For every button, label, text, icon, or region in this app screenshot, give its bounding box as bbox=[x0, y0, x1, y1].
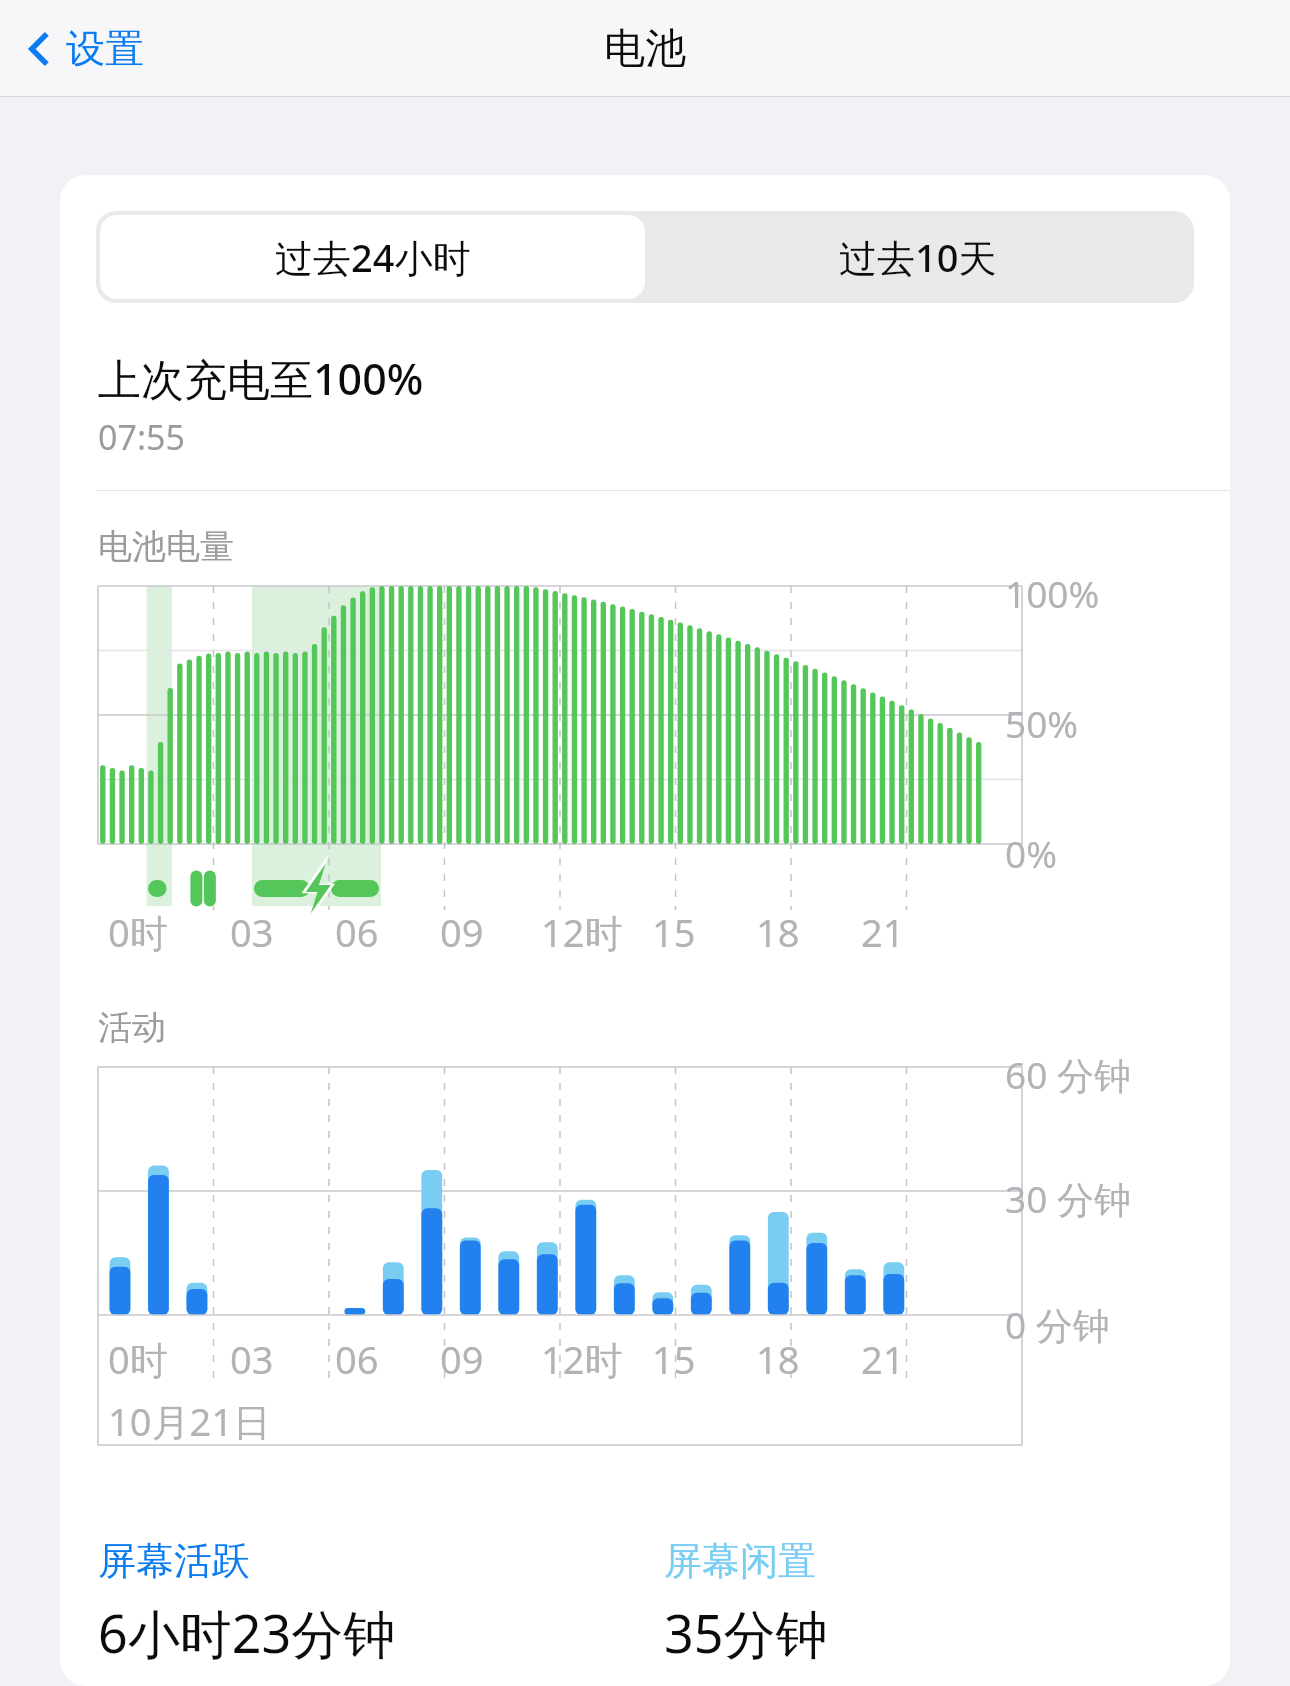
staticText: 设置 bbox=[66, 24, 144, 73]
staticText: 06 bbox=[335, 906, 379, 958]
staticText: 07:55 bbox=[98, 414, 185, 460]
staticText: 活动 bbox=[98, 1006, 166, 1049]
staticText: 0时 bbox=[108, 1333, 168, 1385]
staticText: 上次充电至100% bbox=[98, 349, 424, 408]
button[interactable]: 屏幕闲置 bbox=[664, 1537, 1230, 1668]
staticText: 100% bbox=[1005, 568, 1100, 618]
staticText: 屏幕闲置 bbox=[664, 1537, 816, 1585]
staticText: 0% bbox=[1005, 828, 1057, 878]
staticText: 0 分钟 bbox=[1005, 1299, 1110, 1350]
staticText: 09 bbox=[440, 906, 484, 958]
staticText: 电池电量 bbox=[98, 525, 234, 568]
staticText: 15 bbox=[652, 1333, 696, 1385]
button[interactable]: 过去10天 bbox=[645, 215, 1190, 299]
staticText: 屏幕活跃 bbox=[98, 1537, 250, 1585]
staticText: 09 bbox=[440, 1333, 484, 1385]
button[interactable]: 屏幕活跃 bbox=[98, 1537, 664, 1668]
staticText: 过去24小时 bbox=[275, 231, 471, 283]
staticText: 0时 bbox=[108, 906, 168, 958]
staticText: 60 分钟 bbox=[1005, 1049, 1131, 1100]
staticText: 过去10天 bbox=[839, 231, 997, 283]
button[interactable]: 返回设置 bbox=[26, 24, 144, 73]
staticText: 03 bbox=[230, 906, 274, 958]
staticText: 6小时23分钟 bbox=[98, 1597, 396, 1668]
staticText: 10月21日 bbox=[108, 1395, 271, 1447]
staticText: 30 分钟 bbox=[1005, 1173, 1131, 1224]
staticText: 35分钟 bbox=[664, 1597, 828, 1668]
other: 返回设置 bbox=[26, 26, 52, 72]
staticText: 12时 bbox=[541, 1333, 623, 1385]
button[interactable]: 过去24小时 bbox=[100, 215, 645, 299]
staticText: 21 bbox=[861, 906, 905, 958]
staticText: 18 bbox=[756, 1333, 800, 1385]
staticText: 18 bbox=[756, 906, 800, 958]
staticText: 50% bbox=[1005, 698, 1079, 748]
staticText: 06 bbox=[335, 1333, 379, 1385]
staticText: 电池 bbox=[604, 23, 686, 75]
staticText: 12时 bbox=[541, 906, 623, 958]
staticText: 21 bbox=[861, 1333, 905, 1385]
staticText: 15 bbox=[652, 906, 696, 958]
staticText: 03 bbox=[230, 1333, 274, 1385]
